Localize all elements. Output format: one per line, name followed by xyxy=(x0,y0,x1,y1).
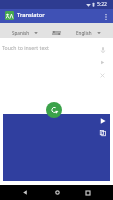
button[interactable]: English xyxy=(64,23,113,38)
button[interactable]: Home xyxy=(51,186,64,199)
button[interactable]: Touch to insert text xyxy=(0,38,113,60)
staticText: Translator xyxy=(17,11,45,19)
button[interactable]: Back xyxy=(18,186,31,199)
button[interactable]: Translate xyxy=(46,102,62,118)
button[interactable]: Copy translation xyxy=(97,127,109,139)
button[interactable]: Spanish xyxy=(0,23,49,38)
button[interactable]: Swap languages xyxy=(49,23,64,38)
button[interactable]: Clear text xyxy=(96,69,109,82)
staticText: English xyxy=(76,30,92,36)
button[interactable]: Listen xyxy=(96,56,109,69)
staticText: Spanish xyxy=(12,30,29,36)
button[interactable]: More options xyxy=(99,10,112,23)
staticText: Touch to insert text xyxy=(2,44,49,51)
button[interactable]: Listen to translation xyxy=(97,115,109,127)
staticText: 5:22 xyxy=(97,1,107,8)
button[interactable]: Recent apps xyxy=(81,186,94,199)
button[interactable]: Voice input xyxy=(96,43,109,56)
